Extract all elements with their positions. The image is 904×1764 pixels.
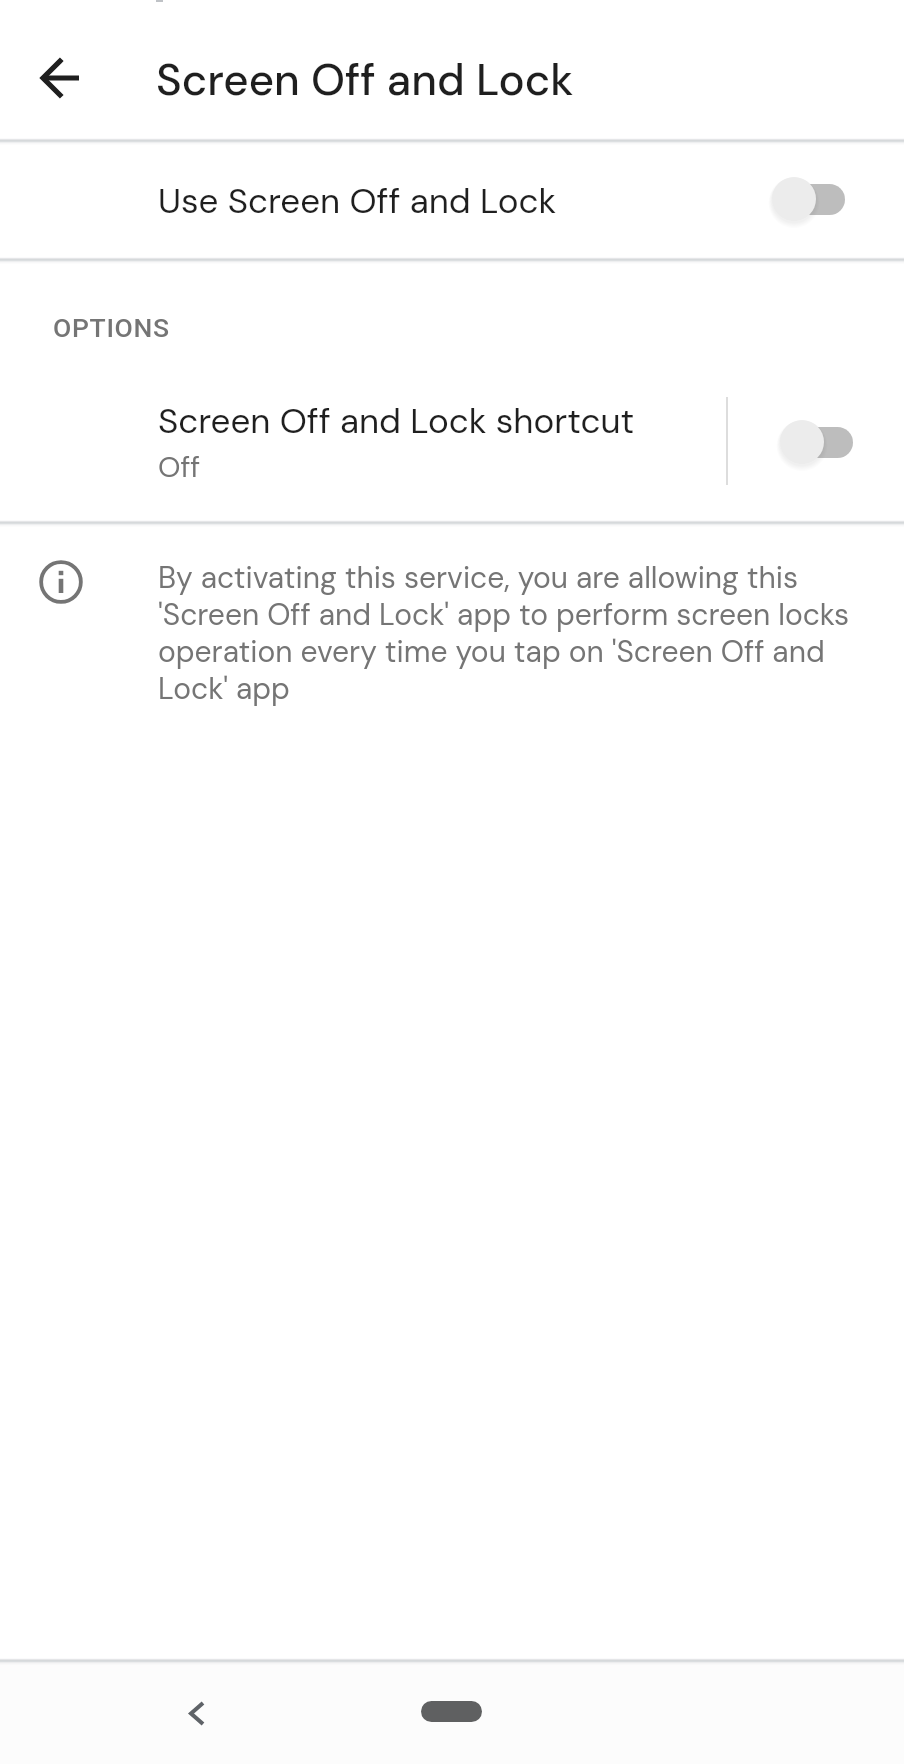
- staticText: Use Screen Off and Lock: [158, 178, 557, 224]
- button[interactable]: Screen Off and Lock shortcut: [0, 363, 726, 520]
- staticText: Screen Off and Lock shortcut: [158, 398, 635, 444]
- staticText: Off: [158, 448, 201, 486]
- button[interactable]: Home: [421, 1701, 482, 1722]
- staticText: Screen Off and Lock: [156, 52, 574, 109]
- staticText: OPTIONS: [53, 312, 170, 343]
- button[interactable]: Navigate up: [24, 41, 97, 114]
- staticText: By activating this service, you are allo…: [158, 558, 850, 708]
- button[interactable]: Toggle Screen Off and Lock shortcut: [728, 363, 904, 520]
- button[interactable]: Use Screen Off and Lock: [0, 141, 904, 257]
- button[interactable]: Back: [166, 1682, 228, 1744]
